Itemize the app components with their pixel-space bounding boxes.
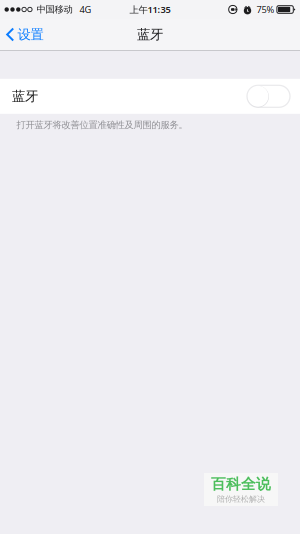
staticText: 蓝牙 <box>137 26 163 43</box>
staticText: 中国移动 <box>37 4 73 15</box>
staticText: 百科全说 <box>211 475 271 493</box>
staticText: 蓝牙 <box>12 88 38 104</box>
button[interactable]: 设置 <box>0 19 53 50</box>
staticText: 设置 <box>17 26 43 43</box>
staticText: 上午11:35 <box>129 3 170 16</box>
staticText: 4G <box>80 3 92 16</box>
staticText: 陪你轻松解决 <box>217 494 265 504</box>
staticText: 75% <box>256 3 274 16</box>
staticText: 打开蓝牙将改善位置准确性及周围的服务。 <box>16 119 187 131</box>
button[interactable]: 蓝牙 <box>0 79 300 114</box>
